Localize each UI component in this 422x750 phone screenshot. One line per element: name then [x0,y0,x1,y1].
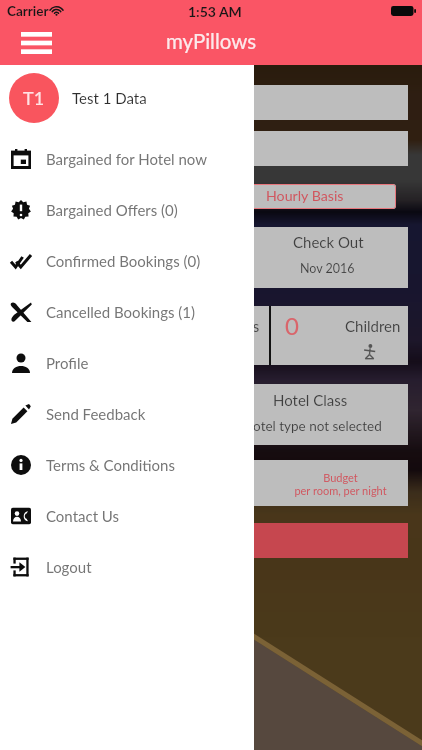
button[interactable]: Logout [0,541,254,592]
staticText: Hourly Basis [266,187,344,204]
staticText: Contact Us [46,507,120,525]
staticText: Bargained Offers (0) [46,201,178,219]
staticText: Children [345,317,401,335]
button[interactable]: Adults [14,306,408,365]
staticText: Nov 2016 [300,261,355,276]
staticText: Adults [217,317,260,335]
button[interactable]: Bargained for Hotel now [0,133,254,184]
staticText: Profile [46,354,89,372]
staticText: Test 1 Data [72,89,147,107]
staticText: Confirmed Bookings (0) [46,252,201,270]
button[interactable]: Profile [0,337,254,388]
staticText: 1:53 AM [188,3,242,20]
staticText: myPillows [166,29,257,54]
staticText: Terms & Conditions [46,456,175,474]
button[interactable]: Confirmed Bookings (0) [0,235,254,286]
staticText: Logout [46,558,92,576]
staticText: Check Out [293,233,364,251]
staticText: 0 [285,311,299,340]
staticText: per room, per night [294,484,387,497]
button[interactable]: Contact Us [0,490,254,541]
staticText: Cancelled Bookings (1) [46,303,196,321]
staticText: Carrier [7,3,49,19]
staticText: Budget [323,471,358,484]
button[interactable]: Send Feedback [0,388,254,439]
button[interactable]: Terms & Conditions [0,439,254,490]
button[interactable] [14,85,408,120]
staticText: Send Feedback [46,405,146,423]
button[interactable]: Hotel Class [14,384,408,445]
button[interactable]: Check Out [14,227,408,288]
button[interactable] [14,523,408,558]
button[interactable]: Open navigation drawer [10,22,62,63]
button[interactable]: Budget [14,460,408,506]
button[interactable]: Cancelled Bookings (1) [0,286,254,337]
staticText: Hotel Class [273,391,348,409]
button[interactable]: Hourly Basis [14,184,396,209]
button[interactable]: T1 [0,65,254,131]
staticText: Bargained for Hotel now [46,150,207,168]
staticText: Hotel type not selected [243,418,382,434]
staticText: T1 [23,87,45,109]
button[interactable]: Bargained Offers (0) [0,184,254,235]
button[interactable] [14,131,408,166]
